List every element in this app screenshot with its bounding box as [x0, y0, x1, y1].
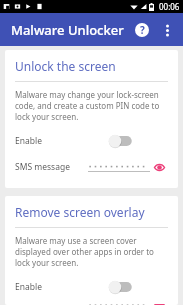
button[interactable]: Unlock the screen: [5, 50, 178, 188]
button[interactable]: Show password: [150, 158, 168, 176]
staticText: 00:06: [159, 1, 180, 12]
staticText: ?: [140, 23, 145, 37]
staticText: Malware Unlocker: [11, 21, 124, 39]
button[interactable]: More options: [155, 18, 179, 42]
staticText: Malware may use a screen cover displayed…: [15, 235, 168, 268]
staticText: SMS message: [15, 161, 88, 173]
button[interactable]: SMS message: [15, 158, 168, 176]
staticText: Enable: [15, 281, 108, 293]
button[interactable]: Show password: [150, 304, 168, 305]
staticText: Unlock the screen: [15, 58, 116, 74]
staticText: Remove screen overlay: [15, 204, 145, 220]
staticText: Malware may change your lock-screen code…: [15, 89, 168, 122]
button[interactable]: Enable: [15, 133, 168, 149]
button[interactable]: SMS message: [15, 304, 168, 305]
button[interactable]: Help: [129, 17, 155, 43]
button[interactable]: Remove screen overlay: [5, 196, 178, 305]
staticText: Enable: [15, 135, 108, 147]
button[interactable]: Enable: [15, 279, 168, 295]
